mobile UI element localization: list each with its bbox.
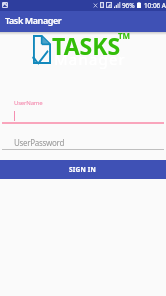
staticText: 10:06 AM (144, 1, 166, 10)
other: Notification (2, 2, 8, 8)
staticText: 96% (122, 1, 135, 10)
staticText: Manager (54, 49, 126, 69)
staticText: Task Manager (5, 14, 62, 26)
staticText: TM (118, 30, 131, 41)
staticText: TASKS (52, 30, 121, 61)
staticText: UserName (14, 99, 43, 107)
button[interactable]: SIGN IN (0, 160, 166, 179)
staticText: UserPassword (14, 137, 65, 148)
staticText: SIGN IN (69, 165, 97, 174)
